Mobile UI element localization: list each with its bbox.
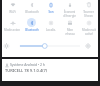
other: Tourner l'écran <box>86 2 92 8</box>
staticText: Système Android • 2 h <box>10 62 45 67</box>
button[interactable]: Mon réseau <box>60 18 79 36</box>
button[interactable]: Tourner l'écran <box>79 0 98 18</box>
button[interactable]: Mode avion <box>2 18 22 36</box>
other: Mode nuit activé <box>86 20 92 26</box>
button[interactable]: Son <box>41 0 60 18</box>
staticText: Bluetooth <box>25 28 39 32</box>
other: Download <box>5 63 9 67</box>
staticText: Économi d'énergie <box>63 10 76 18</box>
staticText: Tourner l'écran <box>83 10 94 18</box>
staticText: Wi-Fi <box>9 10 16 14</box>
other: Mode avion <box>10 20 16 26</box>
button[interactable]: Download <box>2 59 98 81</box>
staticText: Mode nuit activé <box>82 28 96 36</box>
button[interactable]: Localis. <box>41 18 60 36</box>
button[interactable]: Bluetooth <box>22 0 41 18</box>
other: Localis. <box>48 20 54 26</box>
other: Mon réseau <box>67 20 73 26</box>
other: Son <box>48 2 54 8</box>
other: Wi-Fi <box>10 2 16 8</box>
staticText: Mode avion <box>4 28 20 32</box>
staticText: Son <box>48 10 54 14</box>
other: Économi d'énergie <box>67 2 73 8</box>
button[interactable]: Mode nuit activé <box>79 18 98 36</box>
button[interactable]: Wi-Fi <box>2 0 22 18</box>
other: Bluetooth <box>29 2 35 8</box>
staticText: Mon réseau <box>65 28 75 36</box>
staticText: Bluetooth <box>25 10 39 14</box>
button[interactable]: Bluetooth <box>22 18 41 36</box>
staticText: Localis. <box>46 28 56 32</box>
other: Bluetooth <box>29 20 35 26</box>
staticText: TURICELL 78 9.1.0.4(7) <box>5 68 48 73</box>
button[interactable]: Économi d'énergie <box>60 0 79 18</box>
